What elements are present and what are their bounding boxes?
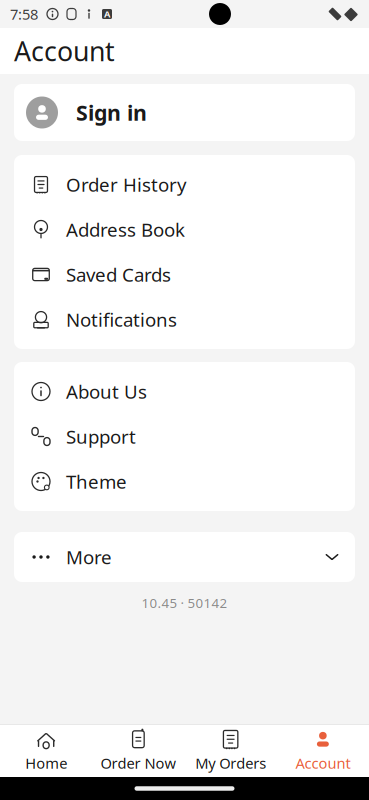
staticText: 10.45 · 50142 — [141, 594, 227, 612]
button[interactable]: My Orders — [184, 725, 277, 777]
button[interactable]: Order Now — [92, 725, 184, 777]
staticText: Notifications — [66, 307, 177, 332]
button[interactable]: Notifications — [14, 297, 355, 342]
button[interactable]: Saved Cards — [14, 252, 355, 297]
staticText: Home — [25, 753, 67, 773]
button[interactable]: Sign in — [14, 84, 355, 141]
staticText: Support — [66, 424, 136, 449]
staticText: My Orders — [195, 753, 266, 773]
staticText: Account — [14, 33, 115, 69]
staticText: Sign in — [76, 98, 147, 127]
button[interactable]: Account — [277, 725, 369, 777]
staticText: About Us — [66, 379, 147, 404]
staticText: Order Now — [100, 753, 176, 773]
staticText: Account — [295, 753, 350, 773]
button[interactable]: Order History — [14, 162, 355, 207]
button[interactable]: About Us — [14, 369, 355, 414]
staticText: Order History — [66, 172, 187, 197]
button[interactable]: Theme — [14, 459, 355, 504]
staticText: More — [66, 545, 112, 569]
staticText: Address Book — [66, 217, 185, 242]
button[interactable]: Home — [0, 725, 92, 777]
staticText: 7:58 — [10, 4, 38, 24]
staticText: A — [104, 8, 110, 20]
button[interactable]: Support — [14, 414, 355, 459]
staticText: Saved Cards — [66, 262, 171, 287]
button[interactable]: More — [14, 532, 355, 582]
button[interactable]: Address Book — [14, 207, 355, 252]
staticText: Theme — [66, 469, 127, 494]
